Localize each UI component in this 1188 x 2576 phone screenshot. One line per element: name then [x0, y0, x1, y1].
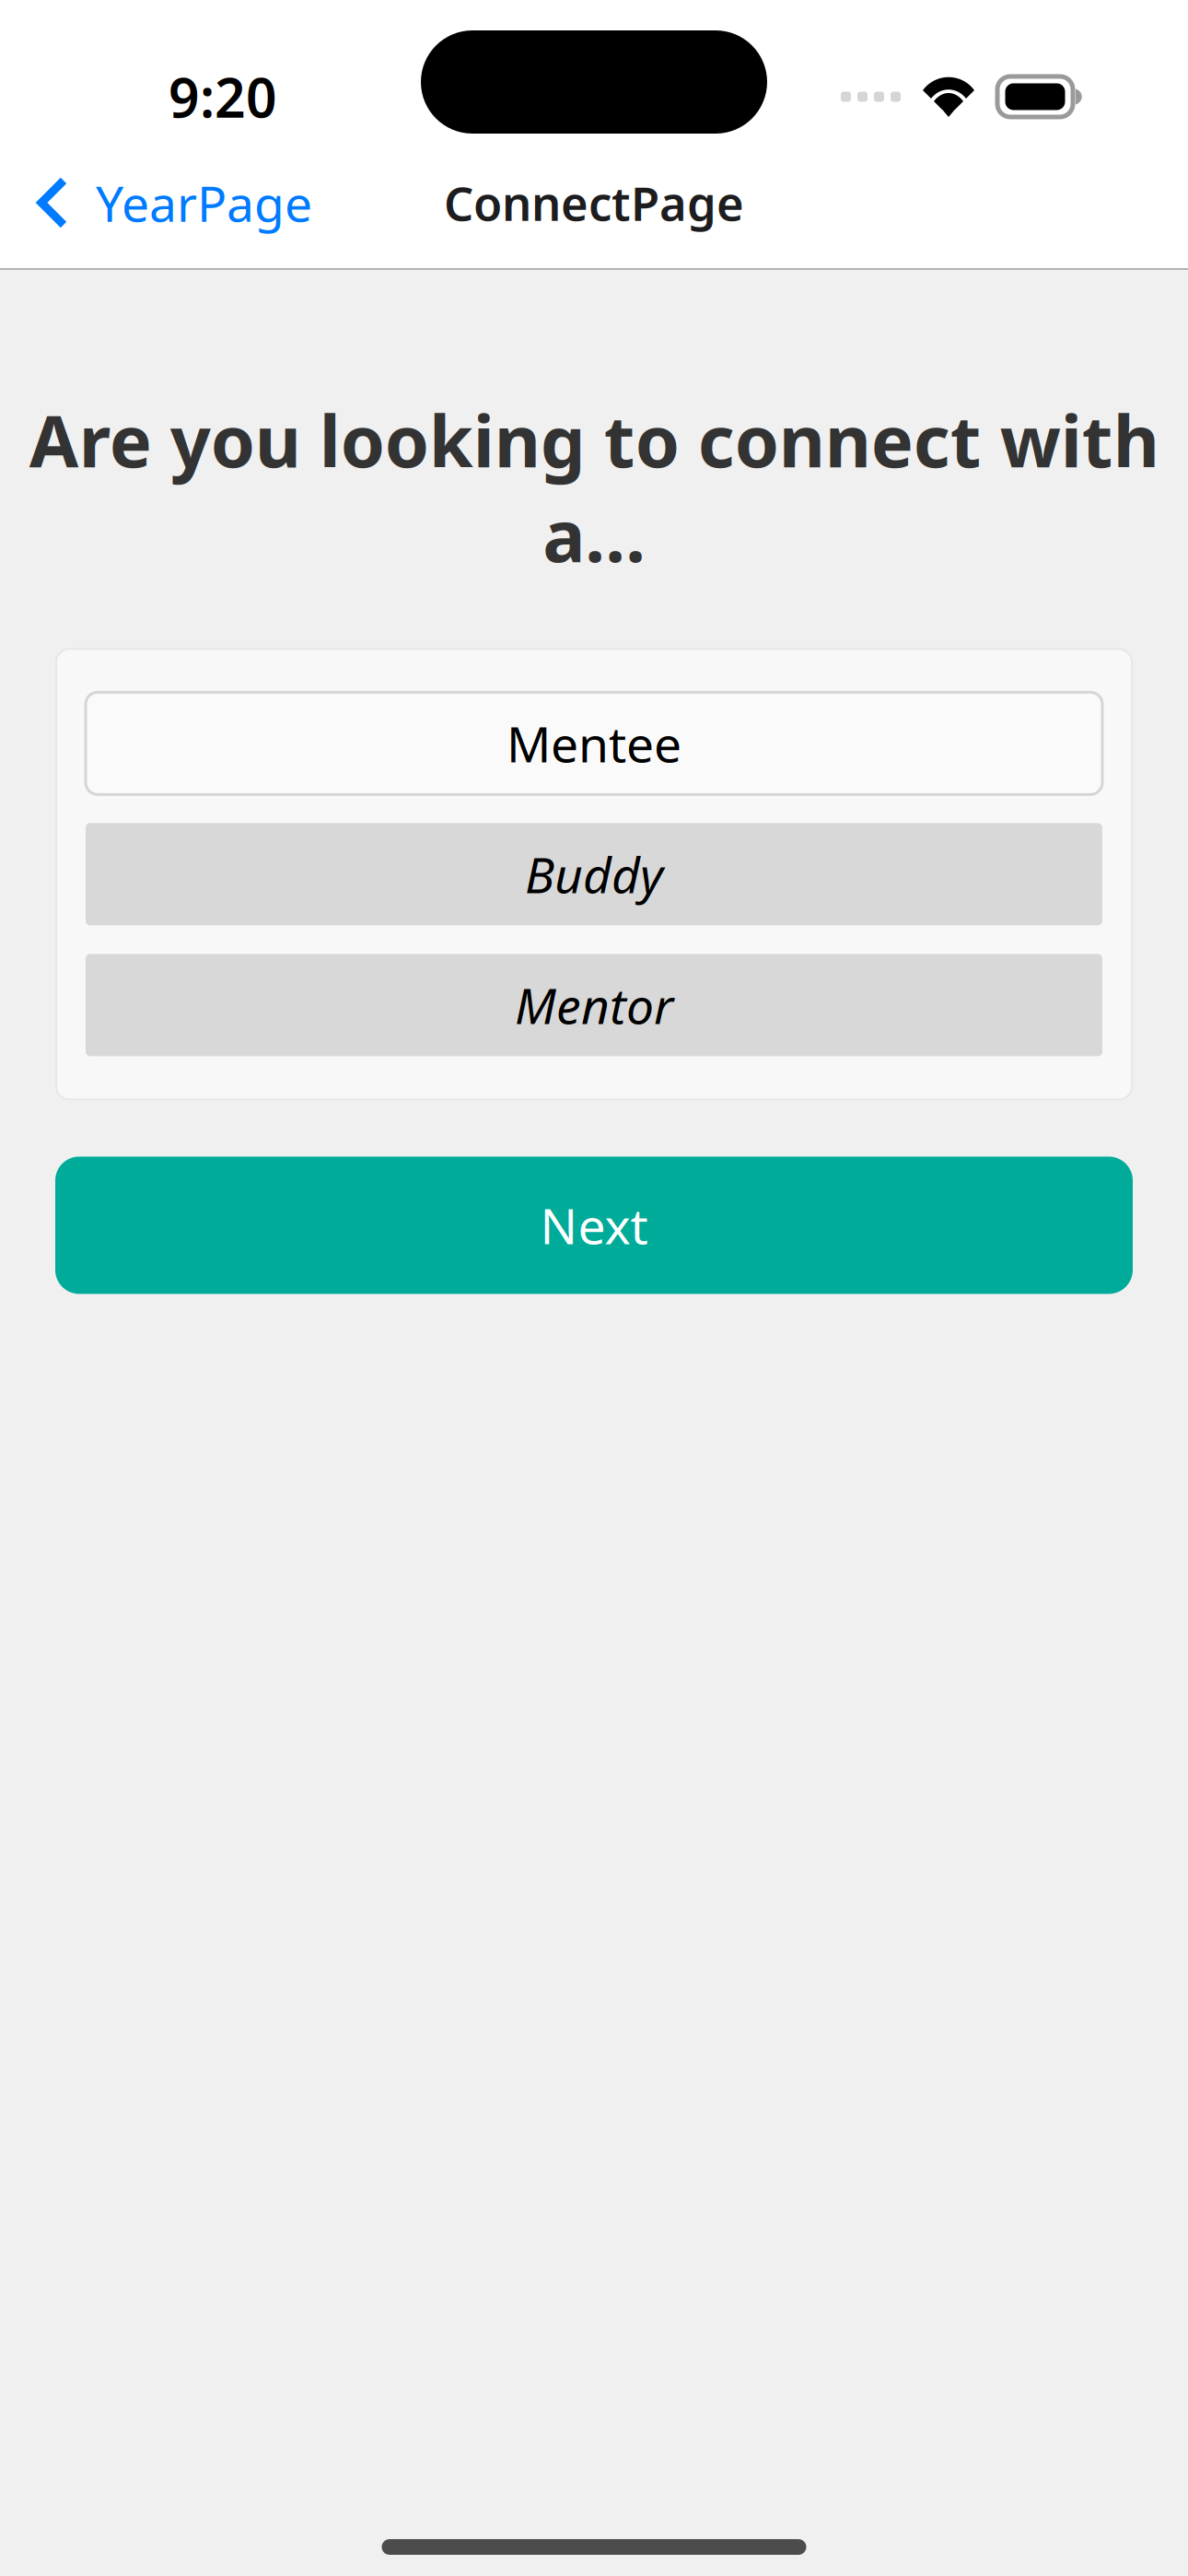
- staticText: Buddy: [525, 842, 663, 907]
- staticText: Next: [540, 1193, 648, 1258]
- staticText: Mentor: [515, 972, 673, 1038]
- button[interactable]: Mentee: [86, 692, 1102, 795]
- staticText: 9:20: [169, 61, 277, 133]
- staticText: YearPage: [96, 170, 312, 235]
- button[interactable]: Buddy: [86, 823, 1102, 925]
- button[interactable]: Next: [55, 1157, 1133, 1294]
- staticText: Are you looking to connect with a...: [29, 392, 1159, 582]
- button[interactable]: Mentor: [86, 954, 1102, 1056]
- button[interactable]: YearPage: [0, 157, 331, 248]
- staticText: ConnectPage: [444, 172, 744, 234]
- staticText: Mentee: [507, 711, 681, 776]
